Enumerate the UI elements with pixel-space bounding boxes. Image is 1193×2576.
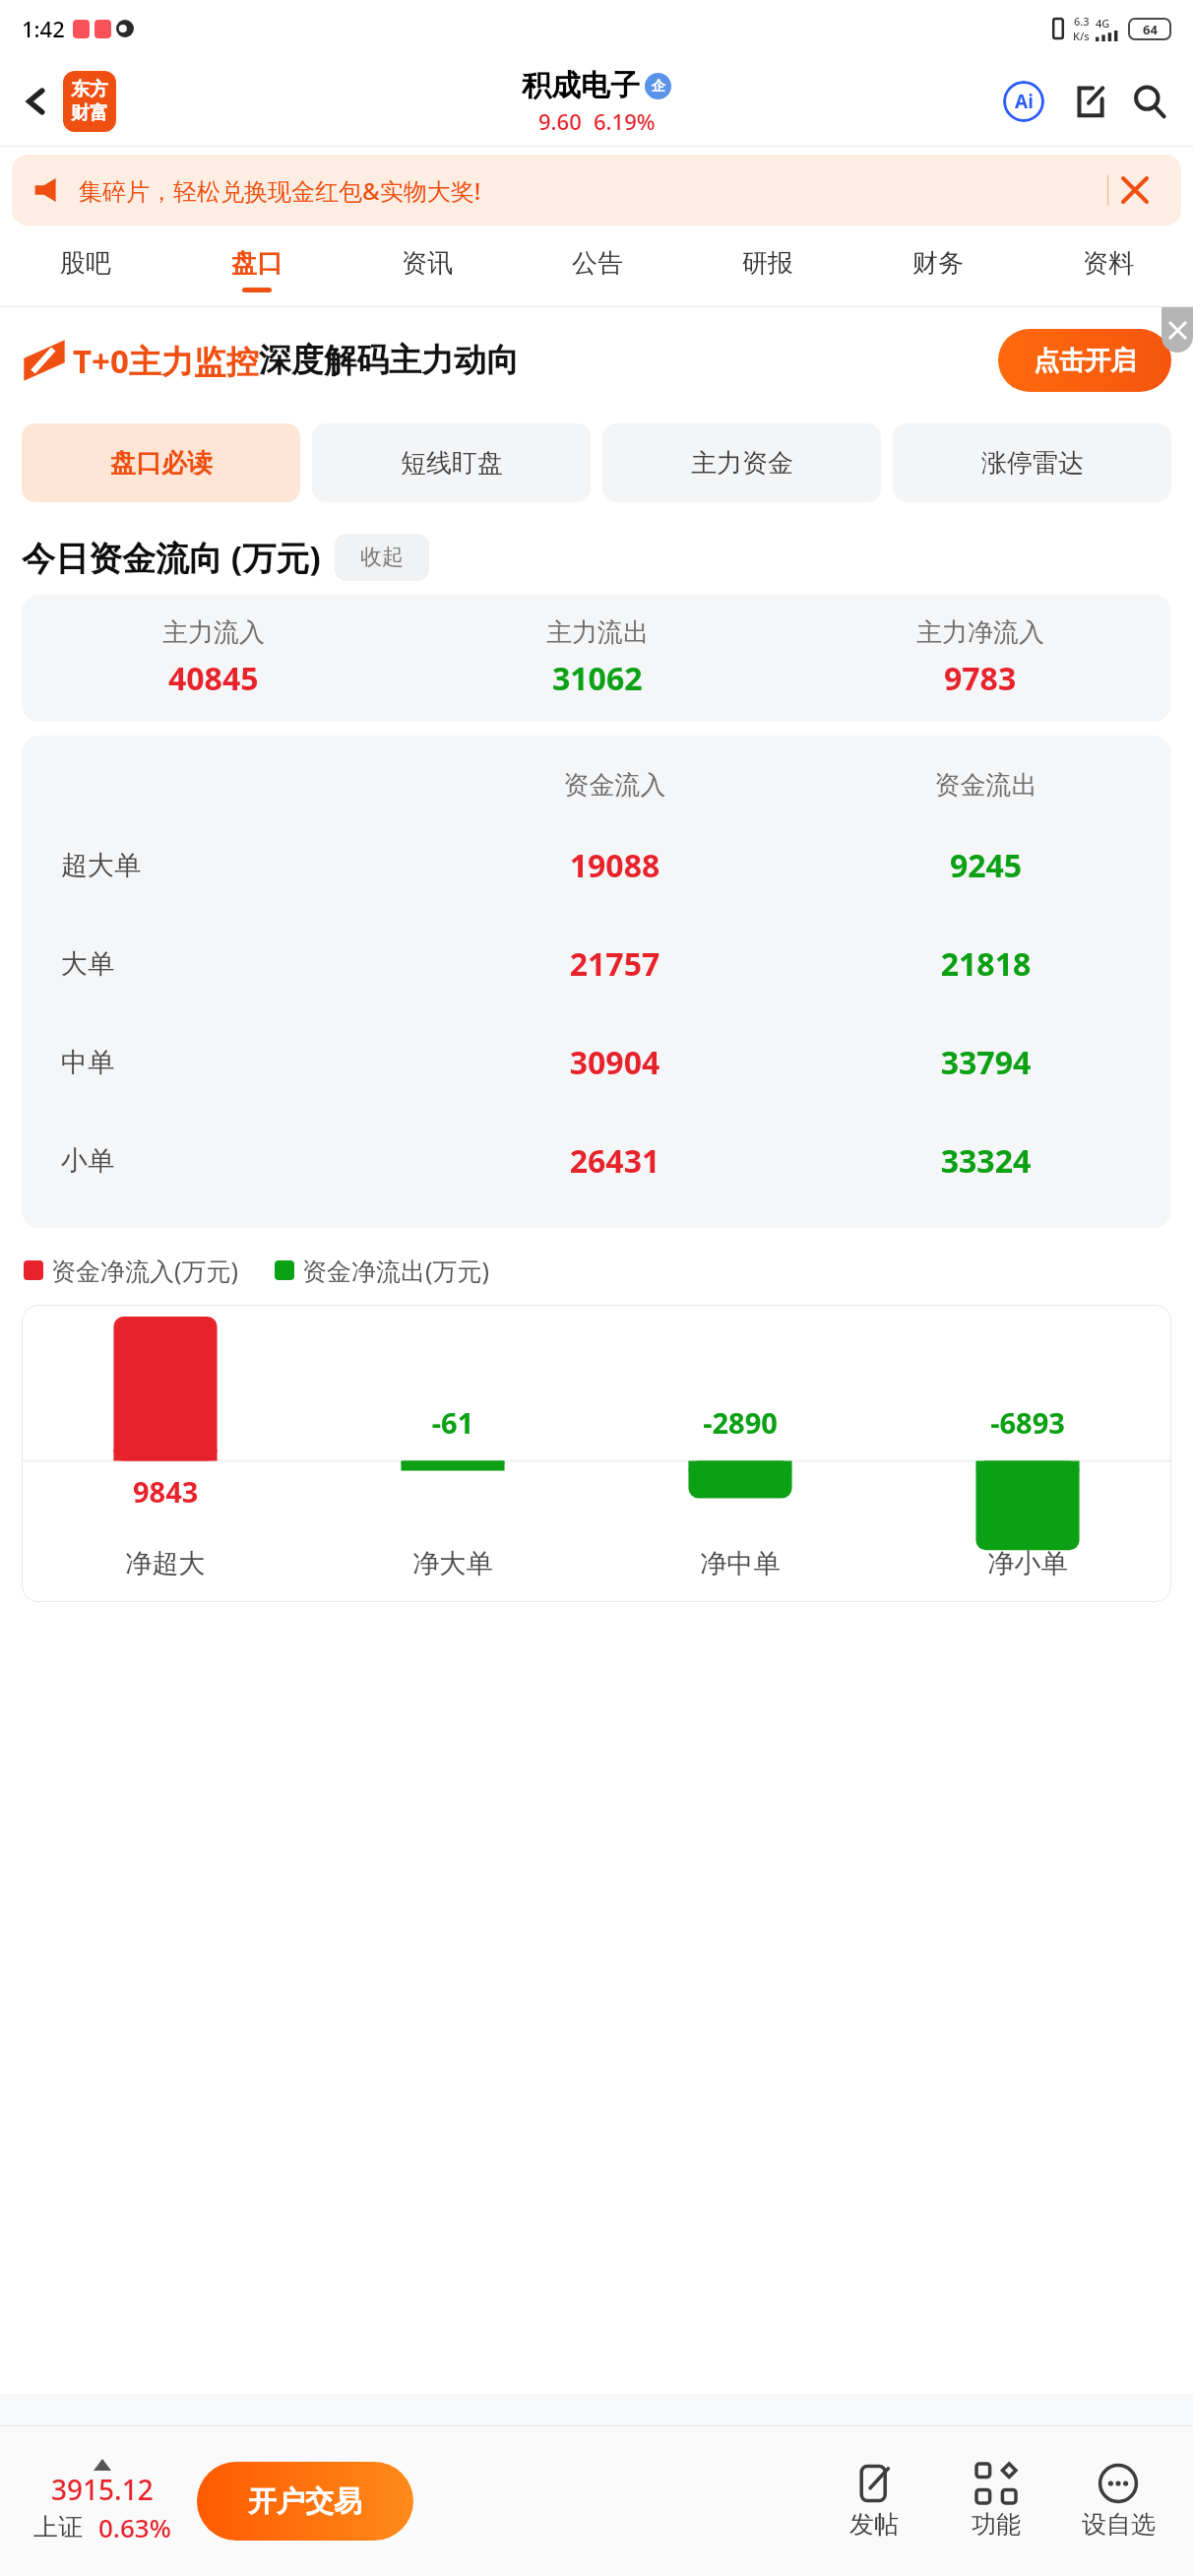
staticText: 积成电子 [522, 67, 640, 104]
button[interactable]: Search [1122, 74, 1177, 129]
staticText: 开户交易 [248, 2483, 362, 2520]
button[interactable]: 资讯 [342, 233, 512, 306]
staticText: 4G [1096, 16, 1110, 31]
staticText: 40845 [168, 657, 259, 700]
staticText: 盘口 [231, 247, 283, 280]
staticText: 主力净流入 [916, 616, 1044, 649]
staticText: Ai [1015, 89, 1034, 114]
button[interactable]: Share [1061, 74, 1116, 129]
staticText: 小单 [61, 1144, 114, 1178]
staticText: 收起 [360, 544, 404, 571]
staticText: 30904 [429, 1041, 800, 1084]
staticText: 研报 [742, 247, 793, 280]
staticText: 33324 [800, 1139, 1171, 1183]
staticText: 净中单 [596, 1547, 884, 1580]
staticText: 19088 [429, 844, 800, 887]
staticText: 主力流入 [162, 616, 265, 649]
staticText: 资金净流入(万元) [51, 1254, 239, 1287]
staticText: -61 [309, 1403, 596, 1442]
button[interactable]: T+0主力监控 [0, 307, 1193, 414]
button[interactable]: 3915.12 [33, 2459, 171, 2544]
button[interactable]: 超大单 [22, 816, 1171, 915]
button[interactable]: 中单 [22, 1013, 1171, 1112]
staticText: 设自选 [1082, 2509, 1156, 2540]
staticText: 大单 [61, 947, 114, 981]
button[interactable]: 盘口 [171, 233, 342, 306]
staticText: -6893 [884, 1403, 1171, 1442]
button[interactable]: 盘口必读 [22, 423, 300, 502]
staticText: 资讯 [402, 247, 453, 280]
staticText: 上证 [33, 2512, 83, 2543]
staticText: 净超大 [22, 1547, 309, 1580]
staticText: 资料 [1083, 247, 1134, 280]
staticText: 资金净流出(万元) [302, 1254, 490, 1287]
button[interactable]: Close [1108, 163, 1162, 217]
staticText: 集碎片，轻松兑换现金红包&实物大奖! [79, 174, 481, 207]
button[interactable]: 小单 [22, 1112, 1171, 1210]
button[interactable]: 收起 [335, 534, 429, 581]
button[interactable]: 短线盯盘 [312, 423, 591, 502]
staticText: 资金流出 [800, 769, 1171, 802]
staticText: 26431 [429, 1139, 800, 1183]
staticText: 9245 [800, 844, 1171, 887]
staticText: K/s [1073, 29, 1090, 43]
staticText: 东方 [71, 78, 108, 101]
button[interactable]: 财务 [852, 233, 1023, 306]
button[interactable]: 涨停雷达 [893, 423, 1171, 502]
button[interactable]: 主力资金 [602, 423, 881, 502]
button[interactable]: Back [14, 79, 59, 124]
button[interactable]: -61 [22, 1305, 1171, 1602]
button[interactable]: 公告 [512, 233, 682, 306]
staticText: 33794 [800, 1041, 1171, 1084]
staticText: T+0主力监控 [73, 339, 259, 383]
button[interactable]: 开户交易 [197, 2462, 413, 2541]
staticText: 主力流出 [546, 616, 649, 649]
button[interactable]: 集碎片，轻松兑换现金红包&实物大奖! [12, 155, 1181, 225]
button[interactable]: East Money [63, 71, 116, 132]
staticText [22, 1403, 309, 1442]
staticText: 21757 [429, 942, 800, 986]
staticText: 6.19% [594, 106, 656, 136]
staticText: 财富 [71, 101, 108, 125]
button[interactable]: 资料 [1023, 233, 1193, 306]
staticText: 财务 [912, 247, 964, 280]
staticText: 超大单 [61, 849, 141, 882]
staticText: 3915.12 [51, 2471, 154, 2508]
button[interactable]: Close ad [1162, 307, 1193, 353]
staticText: 净小单 [884, 1547, 1171, 1580]
staticText: 0.63% [98, 2510, 171, 2544]
staticText: 股吧 [60, 247, 111, 280]
staticText: 1:42 [22, 14, 65, 43]
button[interactable]: 功能 [935, 2464, 1057, 2540]
staticText: 净大单 [309, 1547, 596, 1580]
staticText: 中单 [61, 1046, 114, 1079]
staticText: 主力资金 [691, 447, 793, 480]
staticText: 发帖 [849, 2509, 899, 2540]
button[interactable]: 设自选 [1057, 2464, 1179, 2540]
staticText: 今日资金流向 (万元) [22, 535, 321, 580]
staticText: 功能 [972, 2509, 1021, 2540]
staticText: 6.3 [1074, 14, 1090, 29]
staticText: -2890 [596, 1403, 884, 1442]
staticText: 9843 [133, 1472, 199, 1511]
staticText: 公告 [572, 247, 623, 280]
staticText: 深度解码主力动向 [259, 340, 519, 381]
staticText: 9.60 [538, 106, 582, 136]
staticText: 涨停雷达 [981, 447, 1084, 480]
button[interactable]: 主力流入 [22, 595, 1171, 722]
staticText: 31062 [552, 657, 643, 700]
staticText: 21818 [800, 942, 1171, 986]
button[interactable]: 大单 [22, 915, 1171, 1013]
button[interactable]: 股吧 [0, 233, 171, 306]
staticText: 企 [652, 78, 665, 96]
button[interactable]: 研报 [682, 233, 852, 306]
staticText: 64 [1143, 21, 1158, 38]
button[interactable]: AI assistant [996, 74, 1051, 129]
staticText: 盘口必读 [110, 447, 213, 480]
button[interactable]: 发帖 [813, 2464, 935, 2540]
staticText: 点击开启 [1034, 345, 1136, 377]
button[interactable]: 点击开启 [998, 329, 1171, 392]
staticText: 9783 [944, 657, 1017, 700]
staticText: 短线盯盘 [401, 447, 503, 480]
staticText: 资金流入 [429, 769, 800, 802]
